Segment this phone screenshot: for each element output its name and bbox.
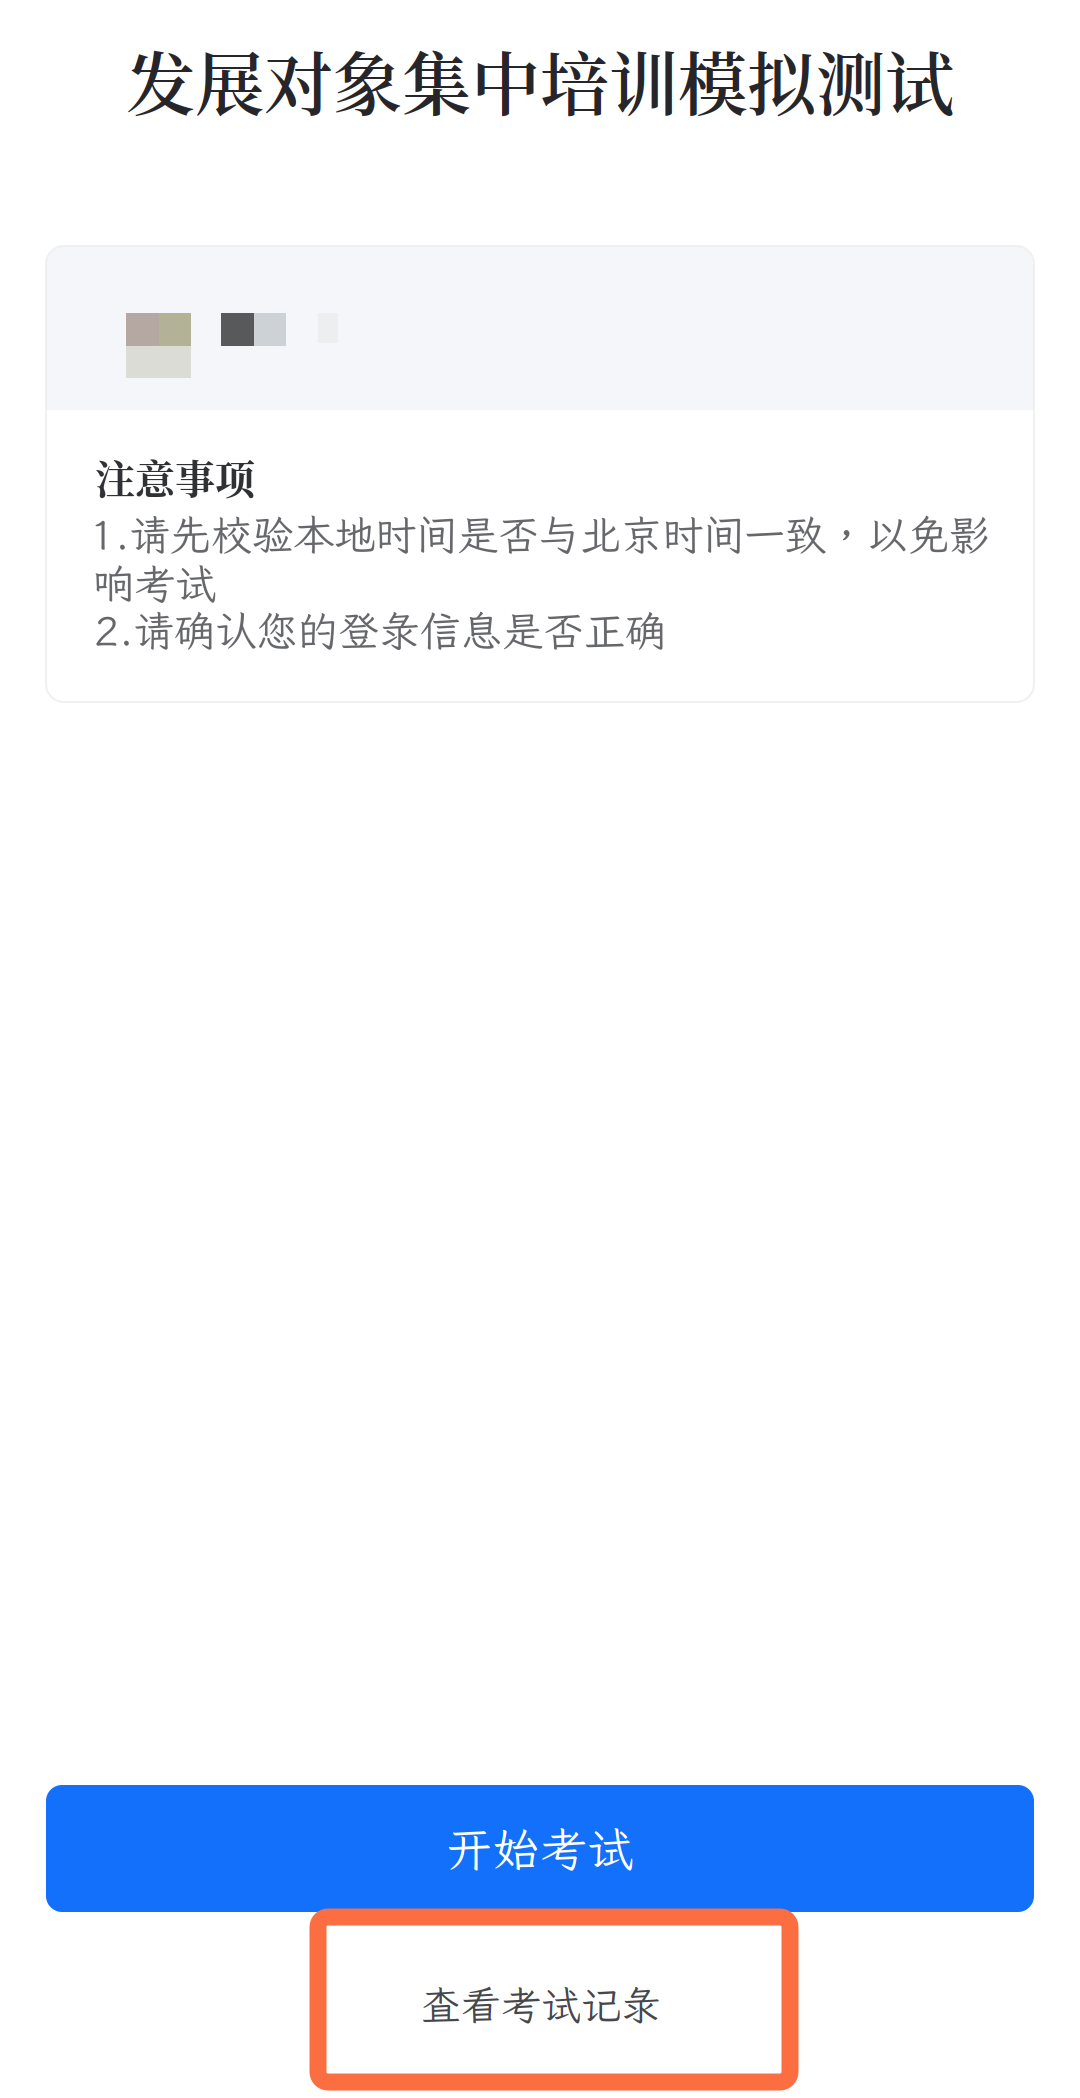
staticText: 注意事项 [95,448,255,505]
staticText: 1.请先校验本地时间是否与北京时间一致，以免影 [90,507,990,561]
button[interactable]: 查看考试记录 [318,1917,790,2082]
staticText: 查看考试记录 [421,1978,661,2031]
button[interactable]: 开始考试 [46,1785,1034,1912]
staticText: 响考试 [93,556,216,610]
staticText: 2.请确认您的登录信息是否正确 [94,603,666,657]
staticText: 发展对象集中培训模拟测试 [126,30,954,130]
staticText: 开始考试 [446,1818,634,1879]
